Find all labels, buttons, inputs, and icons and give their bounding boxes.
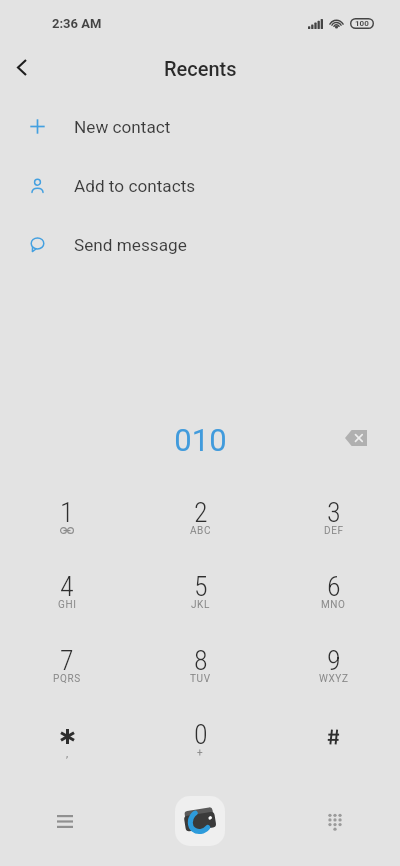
staticText: 8 [194,644,208,677]
staticText: GHI [58,599,77,611]
staticText: 4 [60,570,74,603]
button[interactable]: 4 [0,557,134,631]
button[interactable] [267,705,400,779]
button[interactable]: 7 [0,631,134,705]
button[interactable]: 6 [267,557,400,631]
button[interactable]: Send message [0,215,400,274]
staticText: JKL [191,599,210,611]
staticText: 5 [194,570,208,603]
staticText: DEF [324,525,344,537]
button[interactable]: Dialpad [313,800,357,844]
button[interactable]: 9 [267,631,400,705]
button[interactable]: Back [0,45,44,89]
button[interactable]: 8 [134,631,267,705]
staticText: ABC [190,525,212,537]
staticText: PQRS [53,673,81,685]
button[interactable]: 0 [134,705,267,779]
staticText: 6 [327,570,341,603]
staticText: 100 [355,19,369,28]
staticText: 7 [60,644,74,677]
button[interactable]: 5 [134,557,267,631]
button[interactable]: Backspace [334,416,378,460]
staticText: 2 [194,496,208,529]
button[interactable]: Menu [43,799,87,843]
staticText: Recents [164,57,237,80]
staticText: 2:36 AM [52,16,102,31]
staticText: New contact [74,117,171,137]
staticText: 0 [194,718,208,751]
button[interactable]: Call [172,793,228,849]
staticText: WXYZ [319,673,349,685]
button[interactable]: Add to contacts [0,156,400,215]
button[interactable]: New contact [0,97,400,156]
staticText: 1 [60,496,74,529]
staticText: 3 [327,496,341,529]
button[interactable]: 1 [0,483,134,557]
staticText: Add to contacts [74,176,196,196]
staticText: MNO [321,599,346,611]
button[interactable]: , [0,705,134,779]
button[interactable]: 2 [134,483,267,557]
staticText: 010 [174,422,227,458]
staticText: + [197,747,204,759]
staticText: 9 [327,644,341,677]
staticText: , [66,747,69,760]
staticText: Send message [74,235,187,255]
staticText: TUV [190,673,211,685]
button[interactable]: 3 [267,483,400,557]
